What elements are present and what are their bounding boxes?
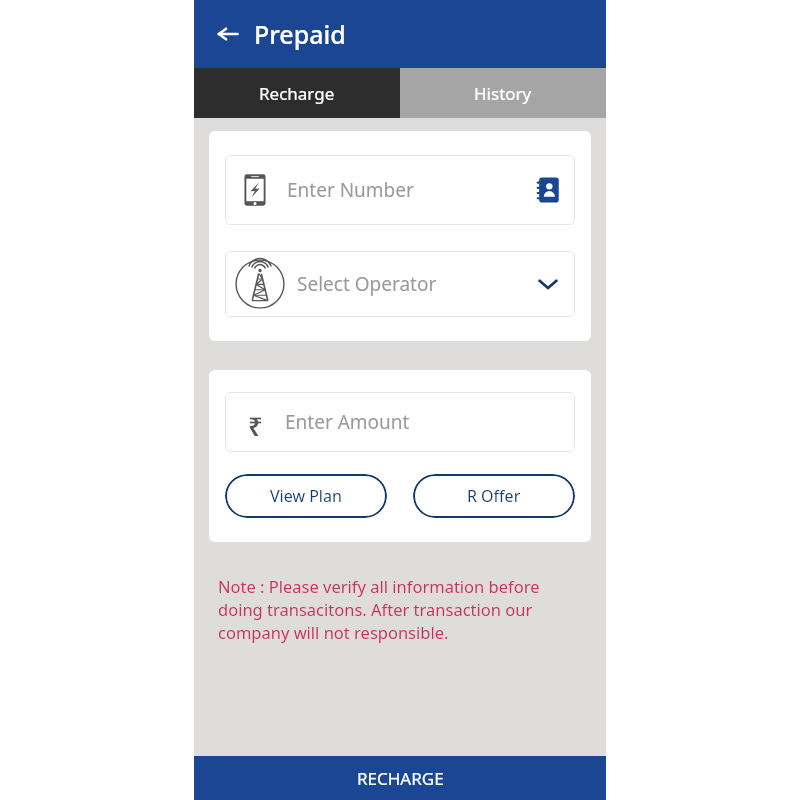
button[interactable]: Recharge [194, 68, 400, 118]
button[interactable]: History [400, 68, 606, 118]
staticText: RECHARGE [357, 767, 444, 790]
button[interactable]: RECHARGE [194, 756, 606, 800]
button[interactable]: R Offer [413, 474, 575, 518]
staticText: Note : Please verify all information bef… [218, 575, 582, 644]
staticText: View Plan [270, 485, 342, 507]
staticText: Enter Amount [285, 409, 410, 435]
button[interactable]: View Plan [225, 474, 387, 518]
staticText: ₹ [248, 408, 263, 436]
staticText: Recharge [259, 82, 335, 105]
staticText: Enter Number [287, 177, 529, 203]
staticText: History [474, 82, 532, 105]
button[interactable]: Pick from contacts [529, 172, 565, 208]
button[interactable]: Back [208, 14, 248, 54]
staticText: Select Operator [297, 271, 531, 297]
staticText: Prepaid [254, 17, 346, 51]
button[interactable]: ₹ [225, 392, 575, 452]
staticText: R Offer [467, 485, 521, 507]
button[interactable]: Select Operator [225, 251, 575, 317]
button[interactable]: Enter Number [225, 155, 575, 225]
